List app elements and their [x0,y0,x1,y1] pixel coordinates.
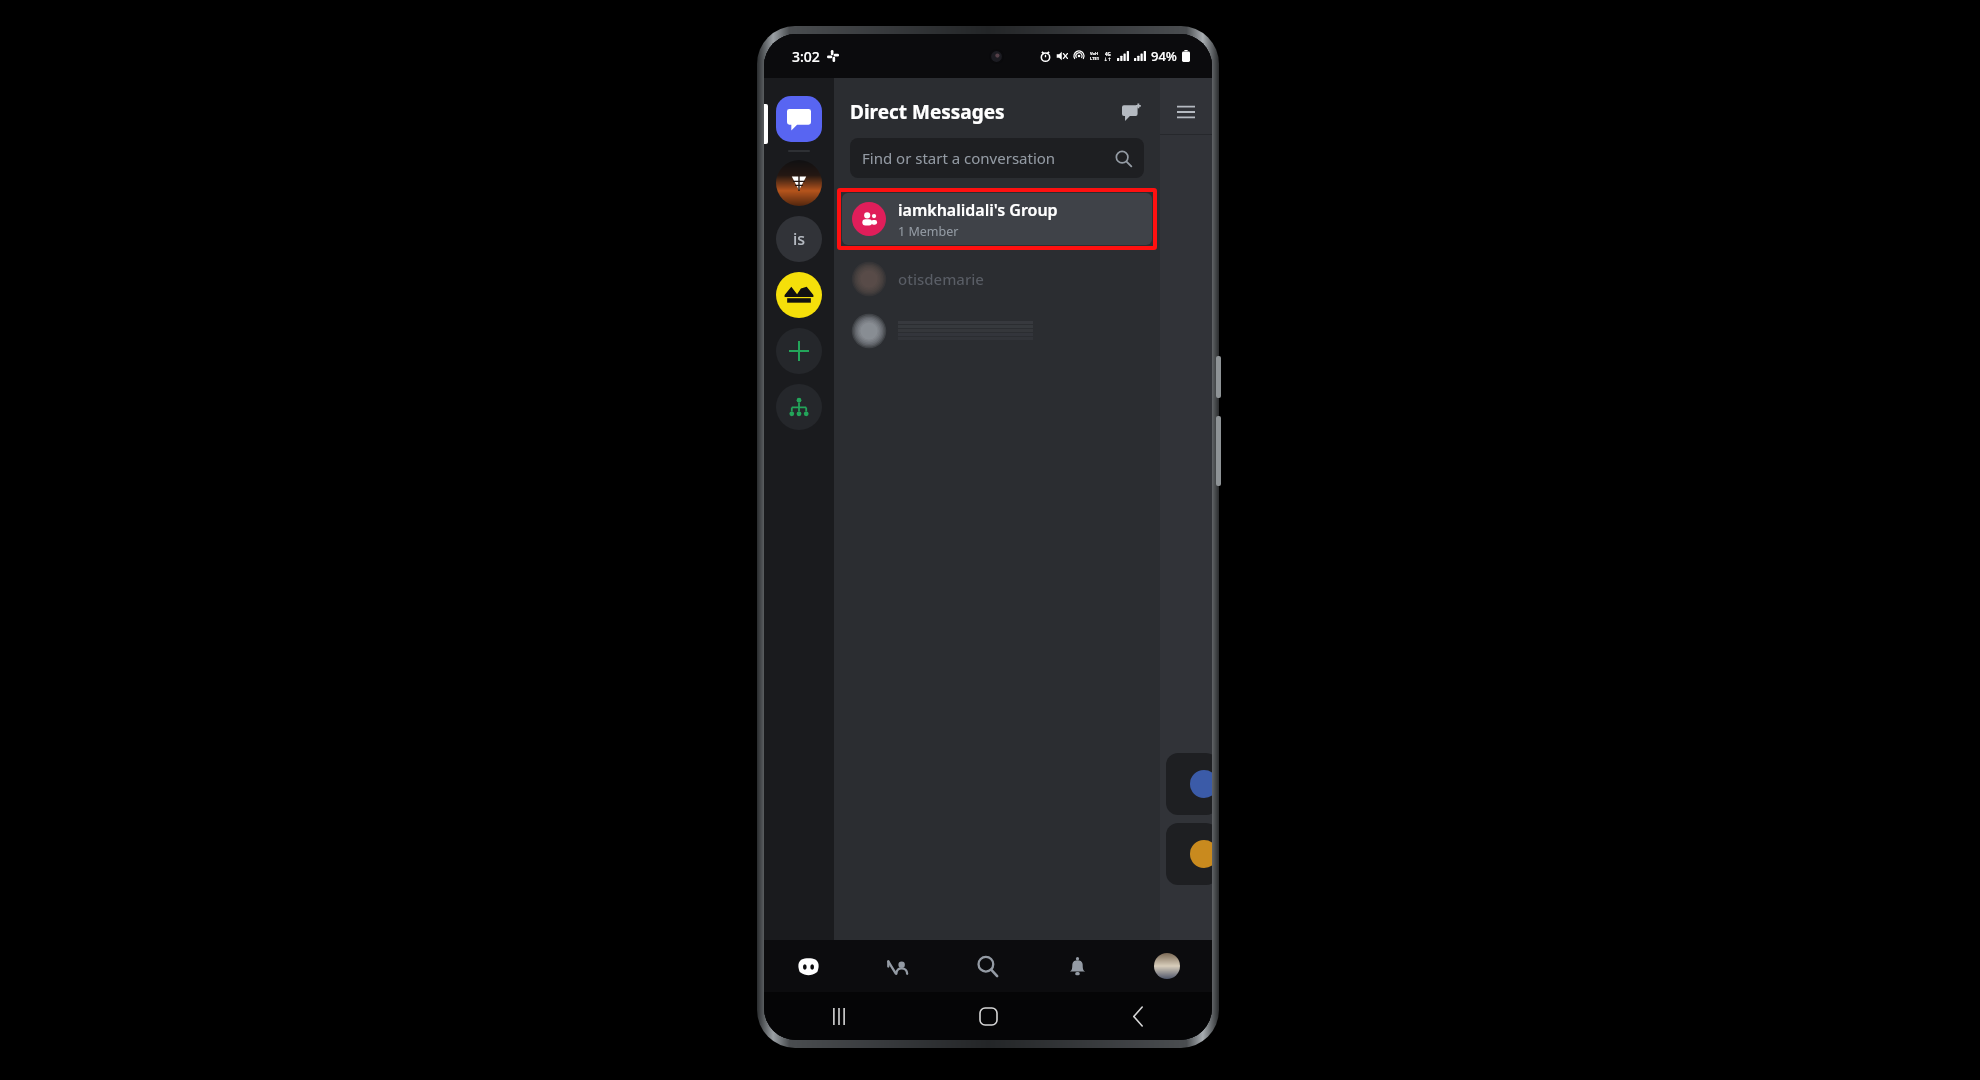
staticText: 4G [1105,51,1111,57]
button[interactable]: Search [942,940,1032,992]
staticText: 94% [1151,47,1177,65]
staticText: 1 Member [898,223,959,240]
button[interactable]: Explore Public Servers [776,384,822,430]
button[interactable]: Recents [764,992,914,1040]
button[interactable] [834,308,1160,354]
button[interactable]: Server [776,272,822,318]
button[interactable]: Add a Server [776,328,822,374]
staticText: iamkhalidali's Group [898,199,1058,221]
button[interactable]: Server [776,160,822,206]
button[interactable]: Menu [1170,96,1202,128]
button[interactable] [1166,753,1212,815]
staticText: ↓↑ [1104,57,1112,62]
button[interactable]: Back [1063,992,1212,1040]
button[interactable]: Notifications [1032,940,1122,992]
staticText: Find or start a conversation [862,148,1056,168]
button[interactable]: Friends [853,940,942,992]
button[interactable]: Direct Messages [776,96,822,142]
button[interactable] [1166,823,1212,885]
button[interactable]: otisdemarie [834,256,1160,302]
staticText: LTE1 [1090,56,1099,61]
staticText: 3:02 [792,47,820,66]
button[interactable]: Home [914,992,1063,1040]
button[interactable]: New Direct Message [1116,97,1146,127]
button[interactable]: Home [764,940,853,992]
staticText: VoH [1090,51,1099,56]
button[interactable]: You [1122,940,1212,992]
staticText: Direct Messages [850,99,1005,125]
button[interactable]: iamkhalidali's Group [842,193,1152,245]
staticText: otisdemarie [898,269,984,289]
button[interactable]: is [776,216,822,262]
staticText: is [793,228,806,250]
button[interactable]: Find or start a conversation [850,138,1144,178]
